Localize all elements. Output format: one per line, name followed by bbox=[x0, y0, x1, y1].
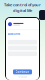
staticText: Continue bbox=[15, 70, 29, 74]
staticText: digital life bbox=[13, 8, 32, 13]
button[interactable]: Continue bbox=[13, 69, 32, 74]
staticText: Take control of your bbox=[4, 2, 41, 7]
staticText: Terms apply bbox=[18, 76, 27, 78]
staticText: Accounts bbox=[8, 32, 20, 36]
